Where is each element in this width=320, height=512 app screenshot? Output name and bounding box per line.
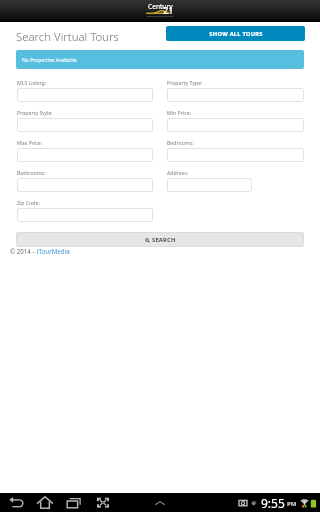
button[interactable]: SEARCH — [16, 232, 304, 247]
staticText: SEARCH — [152, 236, 176, 244]
button[interactable] — [167, 148, 304, 162]
staticText: Bathrooms: — [17, 169, 46, 176]
staticText: Property Type: — [167, 79, 203, 86]
staticText: Max Price: — [17, 139, 43, 146]
staticText: Bedrooms: — [167, 139, 194, 146]
button[interactable] — [167, 88, 304, 102]
staticText: 21 — [163, 4, 174, 16]
staticText: 9:55 — [261, 495, 285, 511]
staticText: MLS Listing: — [17, 79, 47, 86]
button[interactable]: iTourMedia — [37, 247, 70, 255]
staticText: Zip Code: — [17, 199, 40, 206]
button[interactable] — [167, 118, 304, 132]
staticText: © 2014 - — [10, 247, 37, 255]
button[interactable]: Home — [36, 493, 54, 512]
button[interactable] — [17, 88, 153, 102]
button[interactable] — [17, 178, 153, 192]
staticText: SHOW ALL TOURS — [209, 30, 263, 38]
button[interactable] — [17, 118, 153, 132]
staticText: Min Price: — [167, 109, 192, 116]
staticText: Property Style: — [17, 109, 53, 116]
staticText: Search Virtual Tours — [16, 29, 119, 45]
staticText: Address: — [167, 169, 189, 176]
staticText: PM — [287, 500, 297, 508]
button[interactable]: Back — [7, 493, 25, 512]
button[interactable] — [167, 178, 252, 192]
staticText: WE'RE THE 21ST CENTURY — [144, 15, 176, 18]
staticText: No Properties Available — [22, 57, 77, 64]
button[interactable]: SHOW ALL TOURS — [166, 26, 305, 41]
button[interactable]: Recent apps — [65, 493, 83, 512]
staticText: Century — [148, 2, 173, 11]
button[interactable]: Screenshot — [94, 493, 112, 512]
button[interactable] — [17, 148, 153, 162]
button[interactable]: Expand — [151, 494, 169, 512]
button[interactable] — [17, 208, 153, 222]
button[interactable]: Century — [144, 0, 176, 19]
